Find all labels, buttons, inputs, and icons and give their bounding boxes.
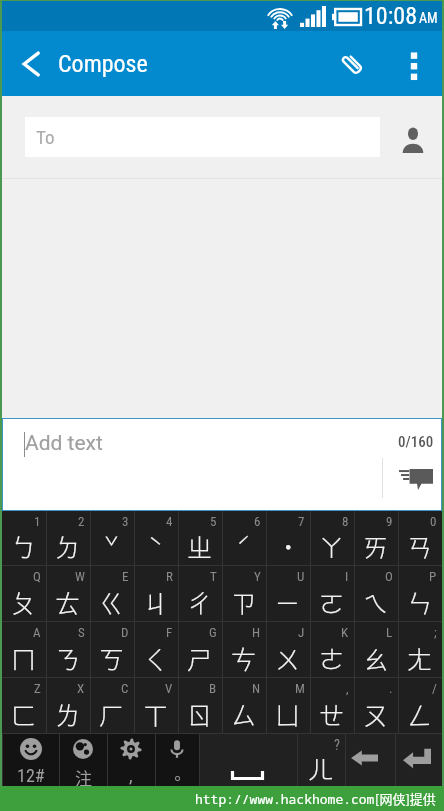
button[interactable]: Space: [199, 734, 297, 786]
button[interactable]: 8: [310, 511, 354, 565]
staticText: ˊ: [236, 528, 252, 564]
staticText: ㄡ: [363, 696, 389, 732]
staticText: ㄗ: [231, 584, 257, 620]
staticText: X: [77, 681, 85, 696]
staticText: S: [78, 625, 85, 640]
button[interactable]: ?: [297, 734, 345, 786]
staticText: ㄩ: [275, 696, 301, 732]
button[interactable]: 7: [266, 511, 310, 565]
staticText: T: [210, 569, 217, 584]
button[interactable]: H: [222, 622, 266, 677]
button[interactable]: 3: [90, 511, 134, 565]
button[interactable]: K: [310, 622, 354, 677]
button[interactable]: ,: [107, 734, 155, 786]
staticText: ㄑ: [143, 640, 169, 676]
button[interactable]: 12#: [2, 734, 59, 786]
button[interactable]: 2: [46, 511, 90, 565]
button[interactable]: A: [2, 622, 46, 677]
staticText: ㄍ: [99, 584, 125, 620]
button[interactable]: R: [134, 566, 178, 621]
button[interactable]: To: [25, 117, 380, 157]
staticText: ㄛ: [319, 584, 345, 620]
button[interactable]: U: [266, 566, 310, 621]
button[interactable]: S: [46, 622, 90, 677]
button[interactable]: More options: [390, 31, 438, 96]
staticText: ㄟ: [363, 584, 389, 620]
staticText: 。: [169, 765, 186, 790]
button[interactable]: E: [90, 566, 134, 621]
button[interactable]: Pick contact: [391, 120, 435, 160]
button[interactable]: B: [178, 678, 222, 733]
button[interactable]: J: [266, 622, 310, 677]
staticText: ㄅ: [11, 528, 37, 564]
button[interactable]: [2, 418, 442, 511]
button[interactable]: I: [310, 566, 354, 621]
button[interactable]: Backspace: [345, 734, 395, 786]
staticText: A: [33, 625, 41, 640]
button[interactable]: O: [354, 566, 398, 621]
button[interactable]: Attach: [324, 31, 380, 96]
staticText: I: [345, 569, 349, 584]
button[interactable]: X: [46, 678, 90, 733]
staticText: To: [36, 126, 55, 148]
button[interactable]: V: [134, 678, 178, 733]
button[interactable]: 注: [59, 734, 107, 786]
button[interactable]: F: [134, 622, 178, 677]
staticText: D: [121, 625, 129, 640]
button[interactable]: L: [354, 622, 398, 677]
staticText: U: [297, 569, 305, 584]
staticText: ?: [334, 737, 340, 753]
button[interactable]: ,: [310, 678, 354, 733]
staticText: 10:08: [364, 2, 417, 30]
staticText: 6: [254, 514, 261, 529]
staticText: 12#: [17, 765, 45, 786]
staticText: Add text: [25, 431, 103, 456]
button[interactable]: Send: [388, 458, 444, 500]
button[interactable]: C: [90, 678, 134, 733]
button[interactable]: Q: [2, 566, 46, 621]
staticText: ㄨ: [275, 640, 301, 676]
staticText: 2: [78, 514, 85, 529]
staticText: ㄐ: [143, 584, 169, 620]
staticText: Z: [34, 681, 41, 696]
button[interactable]: 0: [398, 511, 442, 565]
staticText: W: [75, 569, 85, 584]
button[interactable]: Back: [4, 31, 58, 96]
button[interactable]: /: [398, 678, 442, 733]
button[interactable]: 4: [134, 511, 178, 565]
button[interactable]: 6: [222, 511, 266, 565]
staticText: /: [432, 681, 437, 696]
button[interactable]: P: [398, 566, 442, 621]
staticText: R: [166, 569, 173, 584]
button[interactable]: D: [90, 622, 134, 677]
staticText: ㄎ: [99, 640, 125, 676]
staticText: ㄊ: [55, 584, 81, 620]
button[interactable]: T: [178, 566, 222, 621]
staticText: ,: [346, 681, 349, 696]
staticText: 9: [386, 514, 393, 529]
staticText: 7: [298, 514, 305, 529]
staticText: ㄕ: [187, 640, 213, 676]
button[interactable]: 1: [2, 511, 46, 565]
staticText: K: [341, 625, 349, 640]
button[interactable]: ;: [398, 622, 442, 677]
staticText: V: [165, 681, 173, 696]
button[interactable]: M: [266, 678, 310, 733]
staticText: ㄝ: [319, 696, 345, 732]
button[interactable]: Z: [2, 678, 46, 733]
button[interactable]: .: [354, 678, 398, 733]
staticText: 0/160: [398, 433, 434, 451]
staticText: ˋ: [148, 528, 164, 564]
button[interactable]: 9: [354, 511, 398, 565]
staticText: ㄤ: [407, 640, 433, 676]
button[interactable]: Y: [222, 566, 266, 621]
button[interactable]: W: [46, 566, 90, 621]
staticText: Q: [33, 569, 41, 584]
button[interactable]: 5: [178, 511, 222, 565]
button[interactable]: 。: [155, 734, 199, 786]
staticText: 8: [342, 514, 349, 529]
staticText: AM: [419, 10, 438, 26]
button[interactable]: N: [222, 678, 266, 733]
button[interactable]: G: [178, 622, 222, 677]
button[interactable]: Enter: [395, 734, 442, 786]
